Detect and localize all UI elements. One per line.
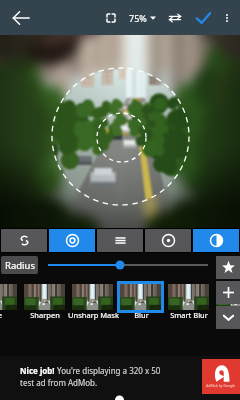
button[interactable]: Apply [192,7,214,29]
button[interactable]: Collapse [216,306,240,329]
button[interactable]: Tool [145,229,191,252]
staticText: Unsharp Mask [68,310,119,320]
button[interactable]: AdMob [202,359,240,394]
button[interactable]: Fit to screen [101,8,121,28]
button[interactable]: Tool [49,229,95,252]
staticText: 75% [129,12,147,24]
staticText: AdMob by Google [206,383,236,388]
staticText: ise [0,310,2,320]
staticText: Sharpen [30,310,60,320]
button[interactable]: More options [218,9,236,27]
staticText: test ad from AdMob. [20,377,98,388]
button[interactable]: Compare [165,8,185,28]
button[interactable]: Radius [1,256,38,274]
staticText: Smart Blur [170,310,208,320]
button[interactable]: Tool [97,229,143,252]
button[interactable]: Add [216,281,240,304]
staticText: Radius [5,259,35,272]
staticText: Nice job! [20,365,55,376]
button[interactable]: Tool [193,229,239,252]
button[interactable]: Back [9,6,33,30]
button[interactable]: 75% [129,12,156,24]
staticText: Blur [134,310,149,320]
button[interactable]: Tool [1,229,47,252]
button[interactable]: Favorite [216,256,240,279]
staticText: You're displaying a 320 x 50 [57,365,161,376]
